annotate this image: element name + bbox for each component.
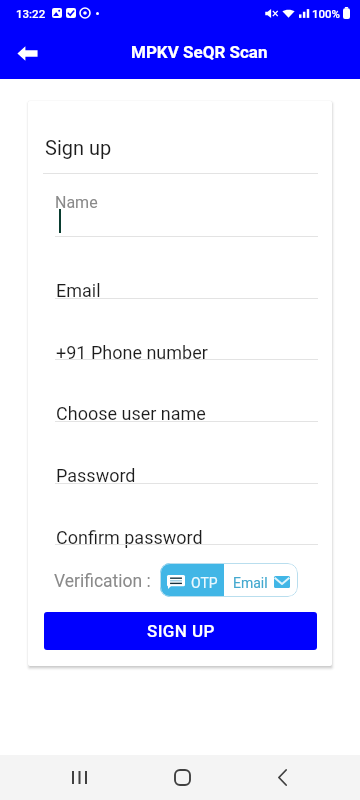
staticText: +91 Phone number (56, 342, 208, 363)
button[interactable]: Home (156, 755, 204, 800)
staticText: 100% (312, 7, 341, 20)
button[interactable]: SIGN UP (44, 612, 317, 650)
staticText: Password (56, 465, 136, 486)
button[interactable]: OTP (160, 563, 224, 597)
staticText: Sign up (45, 136, 112, 159)
staticText: SIGN UP (147, 621, 215, 641)
button[interactable]: Confirm password (28, 483, 332, 545)
button[interactable]: Back (258, 755, 306, 800)
staticText: OTP (191, 575, 218, 591)
button[interactable]: Back (10, 36, 44, 70)
button[interactable]: +91 Phone number (28, 298, 332, 360)
button[interactable]: Recent apps (54, 755, 102, 800)
staticText: 13:22 (16, 7, 46, 20)
button[interactable]: Choose user name (28, 359, 332, 421)
staticText: Verification : (54, 571, 151, 592)
staticText: Choose user name (56, 403, 206, 424)
staticText: Confirm password (56, 527, 203, 548)
button[interactable]: Password (28, 421, 332, 483)
button[interactable]: Name (28, 174, 332, 236)
button[interactable]: Email (28, 236, 332, 298)
button[interactable]: Email (224, 563, 298, 597)
staticText: Name (55, 193, 98, 212)
staticText: Email (233, 575, 268, 591)
staticText: MPKV SeQR Scan (131, 42, 268, 62)
staticText: Email (56, 280, 101, 301)
